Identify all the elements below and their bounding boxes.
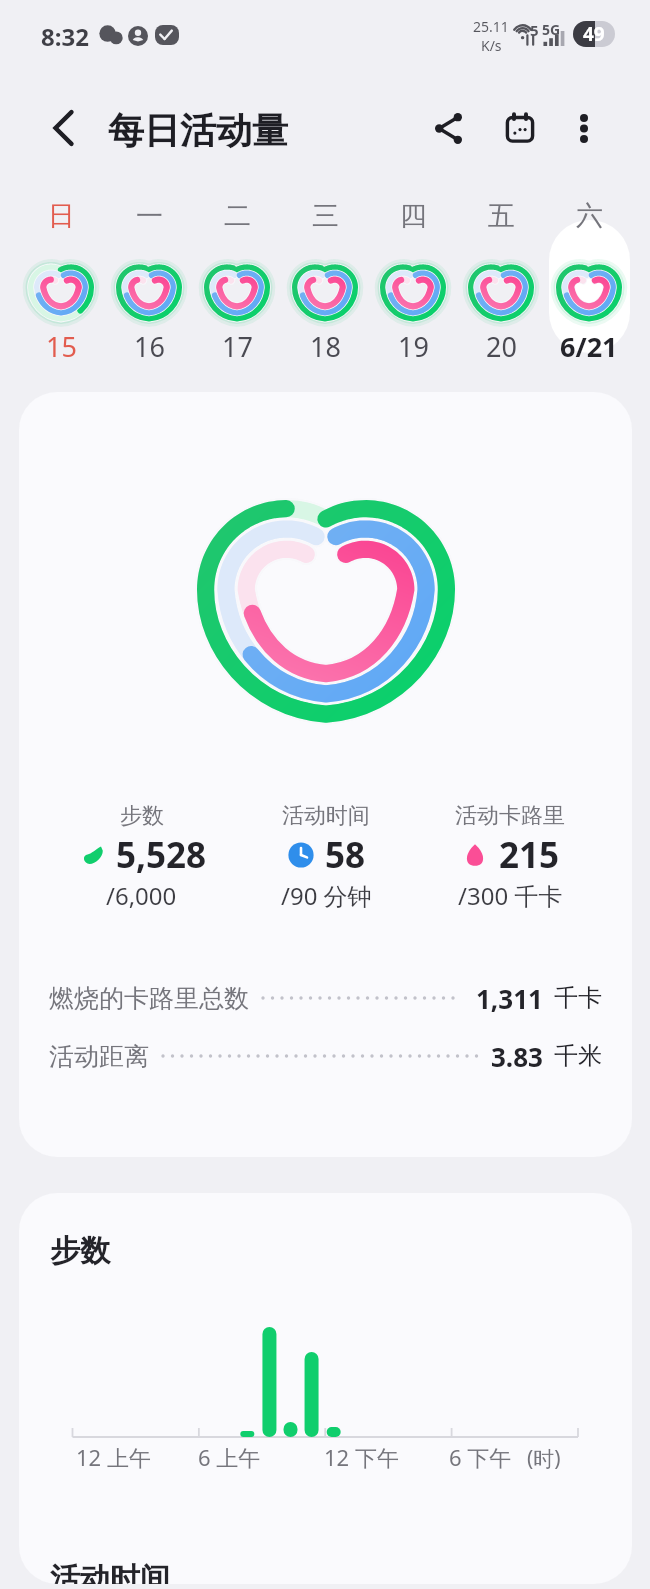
button[interactable]: More options <box>554 98 614 158</box>
staticText: (时) <box>527 1444 561 1473</box>
staticText: 步数 <box>50 1232 110 1270</box>
staticText: 19 <box>398 328 429 365</box>
staticText: 三 <box>312 199 339 233</box>
staticText: /300 千卡 <box>458 879 563 912</box>
staticText: 5 <box>530 20 539 40</box>
button[interactable]: 活动卡路里 <box>418 802 602 912</box>
staticText: 活动时间 <box>50 1560 170 1584</box>
staticText: 3.83 <box>491 1039 543 1074</box>
button[interactable]: 一 <box>116 172 182 365</box>
staticText: 17 <box>222 328 253 365</box>
staticText: 活动时间 <box>282 802 370 830</box>
staticText: 12 下午 <box>324 1442 399 1472</box>
staticText: 16 <box>134 328 165 365</box>
button[interactable]: 三 <box>292 172 358 365</box>
button[interactable]: Calendar <box>490 98 550 158</box>
staticText: 25.11 <box>473 17 509 36</box>
button[interactable]: Back <box>33 98 93 158</box>
staticText: 12 上午 <box>76 1442 151 1472</box>
staticText: 五 <box>488 199 515 233</box>
staticText: 日 <box>48 199 75 233</box>
button[interactable]: 步数 <box>49 802 234 912</box>
button[interactable]: 二 <box>204 172 270 365</box>
staticText: 5G <box>542 20 561 39</box>
staticText: 6 下午 <box>449 1442 512 1472</box>
staticText: 5,528 <box>116 831 207 879</box>
staticText: 58 <box>325 831 366 879</box>
button[interactable]: 活动距离 <box>49 1033 602 1079</box>
staticText: 15 <box>46 328 77 365</box>
staticText: 步数 <box>120 802 164 830</box>
button[interactable]: 日 <box>28 172 94 365</box>
staticText: 千卡 <box>554 983 602 1013</box>
staticText: 每日活动量 <box>108 108 288 153</box>
staticText: 千米 <box>554 1041 602 1071</box>
button[interactable]: 燃烧的卡路里总数 <box>49 975 602 1021</box>
staticText: 燃烧的卡路里总数 <box>49 983 249 1014</box>
button[interactable]: 活动时间 <box>234 802 418 912</box>
staticText: 20 <box>486 328 517 365</box>
staticText: 6/21 <box>560 328 618 365</box>
button[interactable]: 六 <box>556 172 622 365</box>
staticText: 6 上午 <box>198 1442 261 1472</box>
staticText: 活动距离 <box>49 1041 149 1072</box>
staticText: /90 分钟 <box>281 879 372 912</box>
staticText: 二 <box>224 199 251 233</box>
staticText: /6,000 <box>106 879 177 912</box>
staticText: K/s <box>481 36 502 55</box>
staticText: 1,311 <box>476 981 543 1016</box>
staticText: 四 <box>400 199 427 233</box>
staticText: 一 <box>136 199 163 233</box>
staticText: 215 <box>499 831 560 879</box>
staticText: 六 <box>576 199 603 233</box>
button[interactable]: 四 <box>380 172 446 365</box>
staticText: 49 <box>583 21 605 47</box>
staticText: 活动卡路里 <box>455 802 565 830</box>
staticText: 8:32 <box>41 20 89 53</box>
staticText: 18 <box>310 328 341 365</box>
button[interactable]: 五 <box>468 172 534 365</box>
button[interactable]: Share <box>418 98 478 158</box>
